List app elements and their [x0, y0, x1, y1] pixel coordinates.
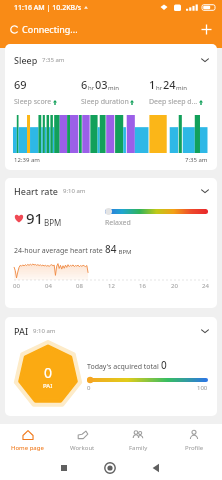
staticText: Heart rate: [14, 185, 59, 197]
button[interactable]: Add device: [195, 18, 217, 40]
staticText: 69: [14, 77, 27, 92]
staticText: PAI: [43, 382, 53, 390]
staticText: Today's acquired total: [87, 362, 161, 372]
button[interactable]: Profile: [166, 424, 222, 456]
staticText: 6: [81, 77, 88, 92]
button[interactable]: Home page: [0, 424, 55, 456]
staticText: Connecting...: [22, 23, 78, 35]
staticText: hr: [88, 84, 95, 92]
staticText: 100: [197, 384, 208, 392]
staticText: 16: [139, 282, 146, 290]
staticText: 08: [76, 282, 83, 290]
staticText: 91: [26, 208, 44, 228]
staticText: Profile: [185, 444, 204, 452]
button[interactable]: Family: [110, 424, 166, 456]
staticText: 7:35 am: [42, 56, 65, 64]
staticText: Relaxed: [105, 218, 131, 228]
staticText: Home page: [11, 444, 44, 452]
staticText: Sleep score: [14, 97, 52, 107]
staticText: 9:10 am: [63, 187, 86, 195]
button[interactable]: Heart rate details: [5, 181, 217, 201]
staticText: 0: [161, 358, 167, 372]
staticText: 00: [13, 282, 20, 290]
staticText: 24: [163, 77, 176, 92]
staticText: 84: [105, 242, 117, 256]
staticText: Family: [129, 444, 148, 452]
staticText: 0: [44, 363, 53, 382]
button[interactable]: Sleep details: [5, 50, 217, 70]
staticText: min: [108, 84, 119, 92]
staticText: Deep sleep d...: [149, 97, 198, 107]
button[interactable]: PAI details: [5, 321, 217, 341]
staticText: 0: [87, 384, 91, 392]
staticText: Sleep: [14, 54, 38, 66]
button[interactable]: Workout: [55, 424, 110, 456]
staticText: 9:10 am: [33, 327, 56, 335]
staticText: Workout: [70, 444, 95, 452]
staticText: 1: [149, 77, 156, 92]
staticText: min: [176, 84, 187, 92]
staticText: hr: [156, 84, 163, 92]
staticText: 24-hour average heart rate: [14, 246, 105, 256]
staticText: 12: [108, 282, 115, 290]
staticText: 24: [202, 282, 209, 290]
staticText: 04: [45, 282, 52, 290]
staticText: 12:39 am: [14, 156, 40, 164]
staticText: 7:35 am: [185, 156, 208, 164]
staticText: PAI: [14, 325, 29, 337]
staticText: BPM: [44, 217, 62, 228]
staticText: 11:16 AM | 10.2KB/s: [14, 3, 82, 13]
staticText: BPM: [117, 248, 132, 256]
staticText: 03: [95, 77, 108, 92]
staticText: Sleep duration: [81, 97, 129, 107]
staticText: 20: [171, 282, 178, 290]
